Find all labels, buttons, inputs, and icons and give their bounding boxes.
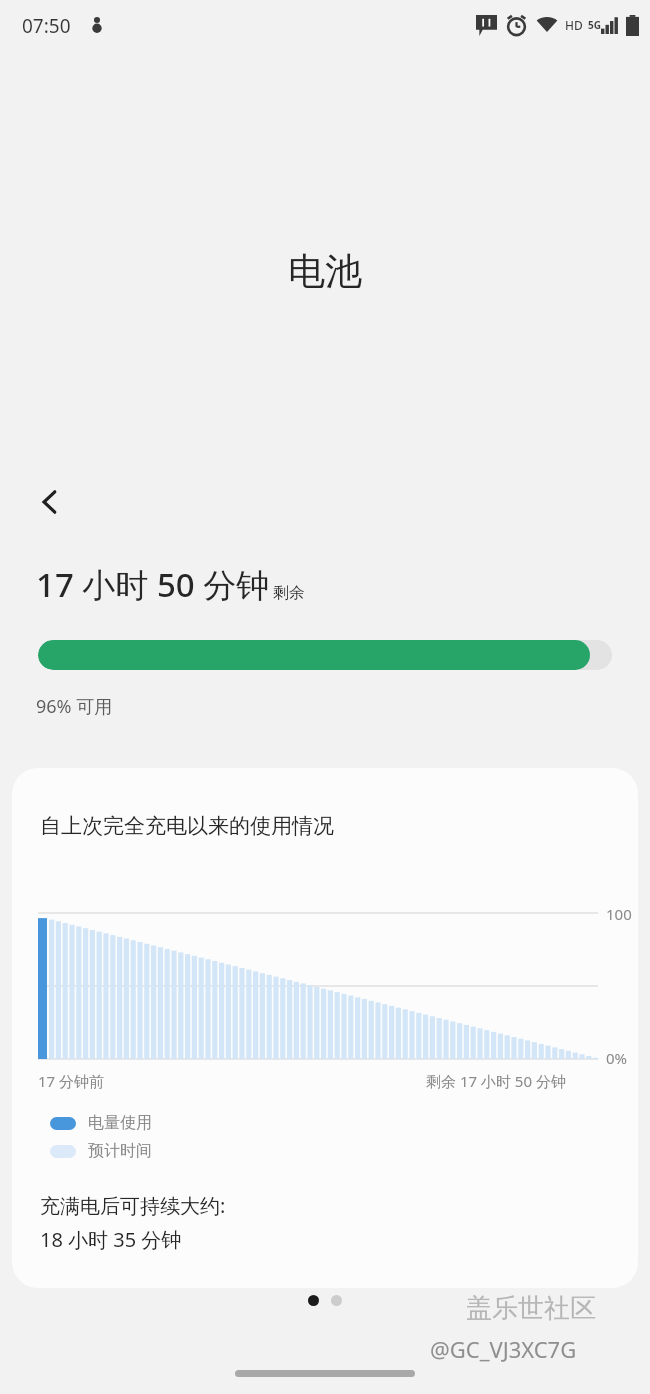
staticText: @GC_VJ3XC7G — [430, 1334, 577, 1364]
staticText: 电池 — [0, 248, 650, 295]
staticText: 电量使用 — [88, 1113, 152, 1133]
button[interactable]: Page 2 — [331, 1295, 342, 1306]
button[interactable]: Page 1 — [308, 1295, 319, 1306]
button[interactable]: 自上次完全充电以来的使用情况 — [12, 768, 638, 1288]
staticText: 充满电后可持续大约: — [40, 1192, 226, 1219]
staticText: 预计时间 — [88, 1141, 152, 1161]
staticText: 07:50 — [22, 13, 71, 39]
staticText: 0% — [606, 1048, 628, 1068]
staticText: 100 — [606, 904, 632, 924]
staticText: 自上次完全充电以来的使用情况 — [40, 813, 334, 839]
staticText: 96% 可用 — [36, 694, 113, 719]
staticText: 5G — [588, 18, 601, 32]
staticText: 剩余 — [273, 583, 305, 603]
staticText: 18 小时 35 分钟 — [40, 1226, 182, 1253]
staticText: 剩余 17 小时 50 分钟 — [426, 1071, 566, 1091]
staticText: 17 分钟前 — [38, 1071, 105, 1091]
staticText: 盖乐世社区 — [466, 1292, 596, 1325]
button[interactable]: Back — [22, 474, 78, 530]
staticText: HD — [565, 17, 583, 33]
staticText: 17 小时 50 分钟 — [36, 562, 270, 607]
